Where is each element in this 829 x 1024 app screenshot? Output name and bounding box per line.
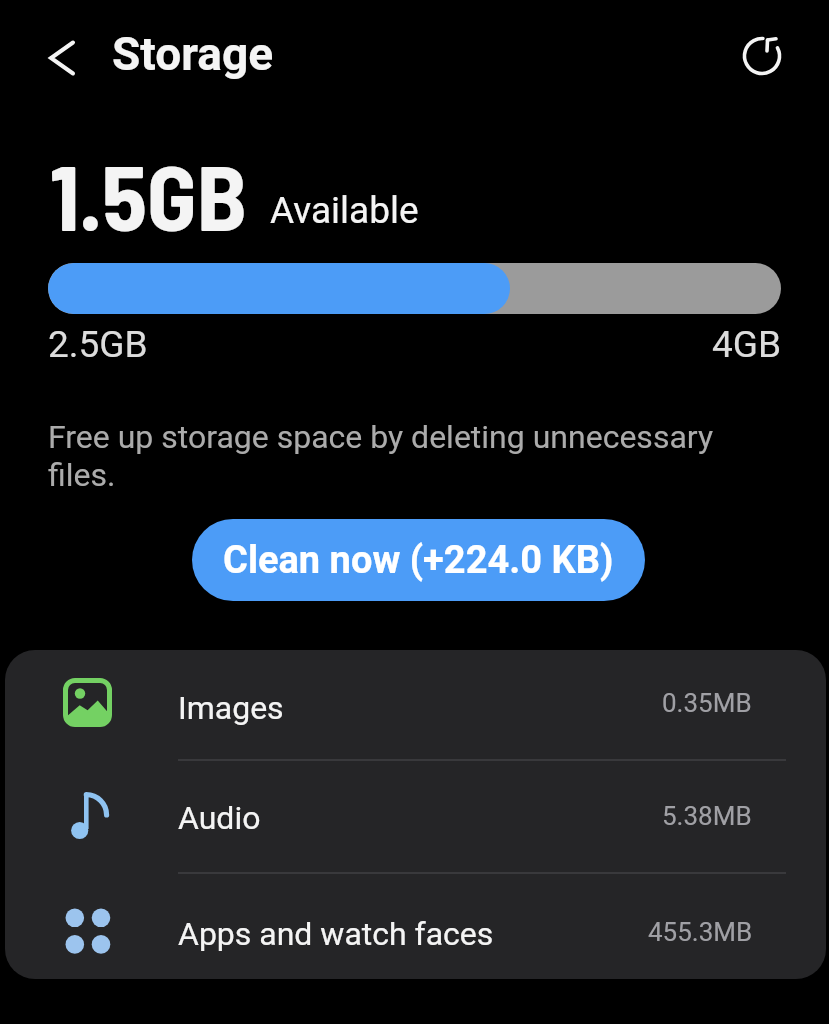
staticText: 4GB	[712, 323, 782, 366]
button[interactable]	[5, 650, 826, 760]
button[interactable]	[38, 30, 86, 78]
staticText: 455.3MB	[648, 917, 753, 947]
staticText: Free up storage space by deleting unnece…	[48, 418, 714, 494]
button[interactable]	[734, 28, 790, 84]
staticText: Available	[270, 189, 419, 232]
staticText: 5.38MB	[662, 801, 752, 831]
button[interactable]: Clean now (+224.0 KB)	[192, 519, 645, 601]
staticText: 1.5GB	[50, 139, 247, 249]
staticText: Images	[178, 689, 284, 727]
staticText: 0.35MB	[662, 688, 752, 718]
staticText: Storage	[112, 27, 274, 81]
button[interactable]	[5, 872, 826, 979]
staticText: Apps and watch faces	[178, 915, 494, 953]
staticText: Audio	[178, 799, 261, 837]
button[interactable]	[5, 760, 826, 872]
staticText: 2.5GB	[48, 323, 148, 366]
staticText: Clean now (+224.0 KB)	[223, 538, 614, 583]
